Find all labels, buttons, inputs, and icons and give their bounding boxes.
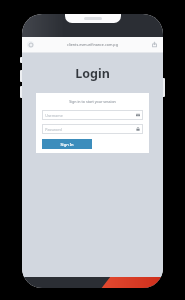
staticText: Login bbox=[75, 65, 110, 82]
button[interactable]: Site information bbox=[27, 41, 34, 48]
staticText: Username bbox=[45, 113, 63, 118]
button[interactable]: Share bbox=[151, 41, 158, 48]
button[interactable]: Username bbox=[42, 110, 143, 120]
button[interactable]: Sign In bbox=[42, 139, 92, 149]
staticText: clients.esmurifinance.com.pg bbox=[67, 42, 118, 47]
staticText: Sign In bbox=[60, 142, 74, 147]
staticText: Sign in to start your session bbox=[69, 99, 116, 104]
staticText: Password bbox=[45, 127, 62, 132]
button[interactable]: Password bbox=[42, 124, 143, 134]
